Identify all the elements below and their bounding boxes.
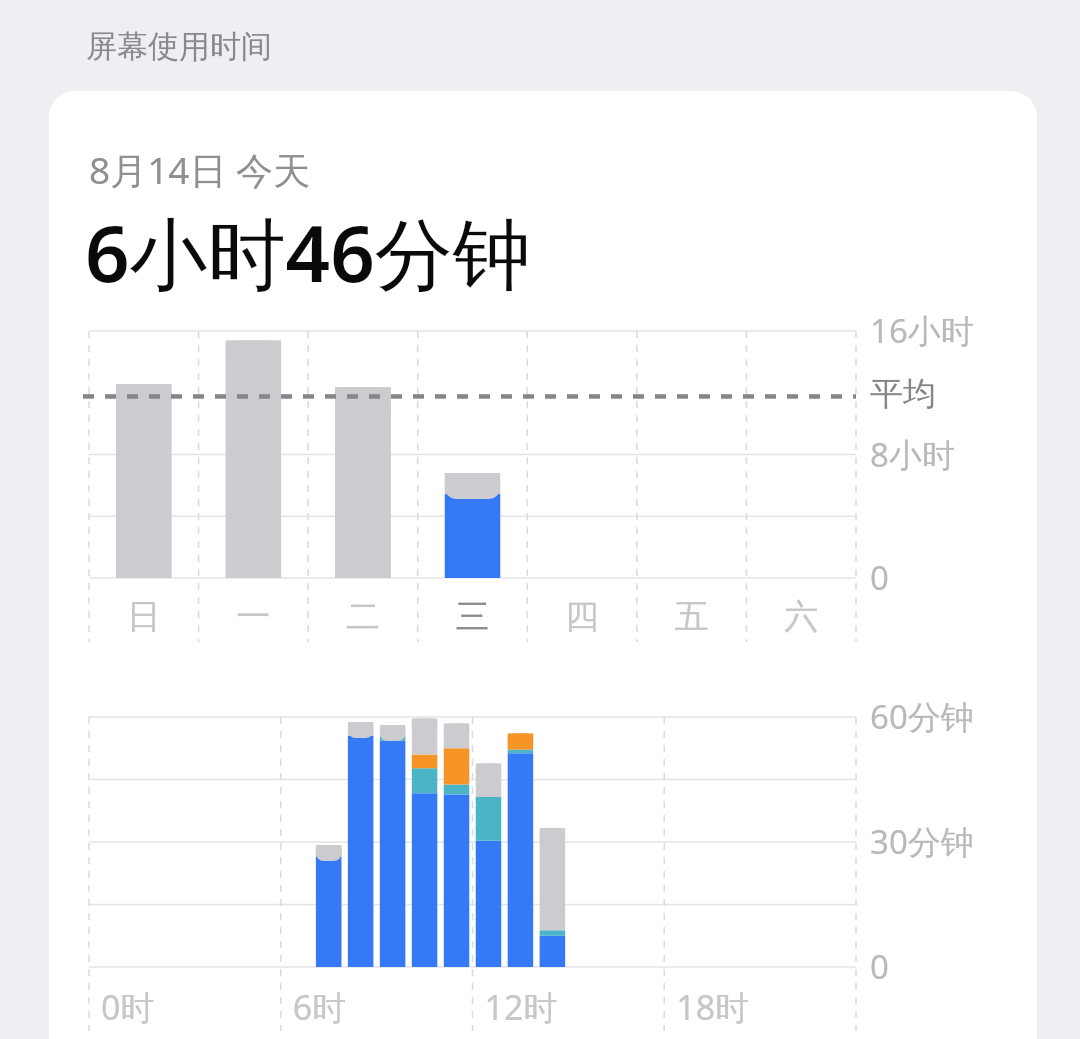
button[interactable]: Screen Time summary card bbox=[0, 0, 1080, 1039]
